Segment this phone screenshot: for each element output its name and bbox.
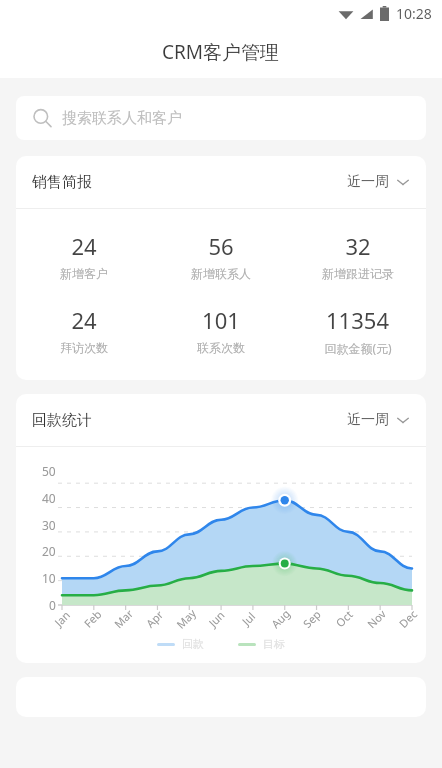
staticText: 24 — [71, 231, 97, 261]
staticText: 回款 — [182, 637, 204, 651]
button[interactable]: 32 — [289, 231, 426, 281]
staticText: 32 — [345, 231, 371, 261]
staticText: 搜索联系人和客户 — [62, 109, 182, 128]
staticText: 10 — [42, 570, 56, 586]
staticText: Jun — [205, 607, 228, 630]
staticText: 24 — [71, 305, 97, 335]
staticText: 新增客户 — [60, 266, 108, 281]
staticText: 近一周 — [347, 173, 389, 191]
staticText: 销售简报 — [32, 173, 92, 192]
staticText: 联系次数 — [197, 340, 245, 355]
staticText: Dec — [396, 606, 420, 631]
staticText: 回款统计 — [32, 411, 92, 430]
staticText: 40 — [42, 490, 56, 506]
staticText: Nov — [364, 606, 389, 631]
staticText: 11354 — [326, 305, 389, 335]
staticText: Jan — [51, 607, 73, 629]
button[interactable]: 24 — [16, 305, 152, 355]
staticText: Oct — [332, 607, 356, 630]
button[interactable]: 近一周 — [347, 173, 410, 191]
button[interactable]: 56 — [152, 231, 289, 281]
button[interactable]: 24 — [16, 231, 152, 281]
staticText: Sep — [300, 606, 324, 631]
staticText: 新增联系人 — [191, 266, 251, 281]
staticText: 目标 — [263, 637, 285, 651]
staticText: 30 — [42, 517, 56, 533]
button[interactable]: 搜索联系人和客户 — [16, 96, 426, 140]
staticText: 0 — [49, 597, 56, 613]
staticText: Apr — [142, 606, 166, 630]
button[interactable]: 101 — [152, 305, 289, 355]
staticText: Jul — [239, 609, 258, 628]
button[interactable]: 回款 — [157, 637, 204, 651]
staticText: May — [173, 605, 199, 632]
staticText: Feb — [80, 606, 104, 630]
staticText: 20 — [42, 543, 56, 559]
staticText: 50 — [42, 463, 56, 479]
staticText: 新增跟进记录 — [322, 266, 394, 281]
staticText: Mar — [111, 606, 136, 631]
staticText: CRM客户管理 — [162, 39, 280, 65]
button[interactable]: 11354 — [289, 305, 426, 356]
staticText: Aug — [268, 606, 293, 631]
button[interactable]: 近一周 — [347, 411, 410, 429]
button[interactable]: 目标 — [238, 637, 285, 651]
staticText: 回款金额(元) — [324, 340, 392, 356]
staticText: 101 — [202, 305, 240, 335]
staticText: 拜访次数 — [60, 340, 108, 355]
staticText: 近一周 — [347, 411, 389, 429]
staticText: 10:28 — [396, 4, 432, 23]
staticText: 56 — [208, 231, 234, 261]
